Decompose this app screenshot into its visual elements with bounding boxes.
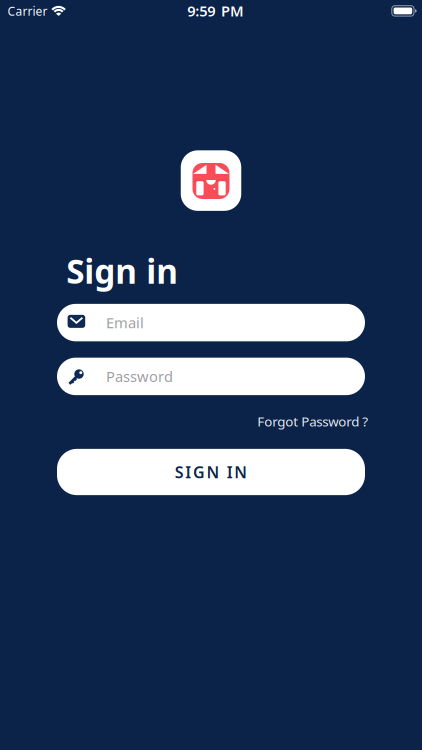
staticText: Email <box>106 313 144 332</box>
staticText: Sign in <box>66 249 178 293</box>
staticText: 9:59 <box>187 1 215 20</box>
staticText: Password <box>106 367 173 386</box>
staticText: Forgot Password ? <box>257 412 368 430</box>
button[interactable]: Password <box>57 358 365 395</box>
staticText: SIGN IN <box>175 461 247 483</box>
staticText: Carrier <box>7 3 47 19</box>
button[interactable]: SIGN IN <box>57 449 365 495</box>
button[interactable]: Forgot Password ? <box>257 412 368 430</box>
button[interactable]: Email <box>57 304 365 341</box>
staticText: PM <box>221 1 244 20</box>
